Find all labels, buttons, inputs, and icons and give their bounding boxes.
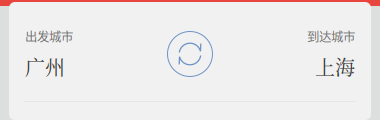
staticText: 上海 xyxy=(315,52,355,81)
button[interactable]: 到达城市 xyxy=(212,27,355,81)
staticText: 出发城市 xyxy=(25,27,73,45)
button[interactable]: 出发城市 xyxy=(25,27,167,81)
staticText: 到达城市 xyxy=(307,27,355,45)
button[interactable]: Swap departure and arrival cities xyxy=(167,31,212,76)
staticText: 广州 xyxy=(25,52,65,81)
